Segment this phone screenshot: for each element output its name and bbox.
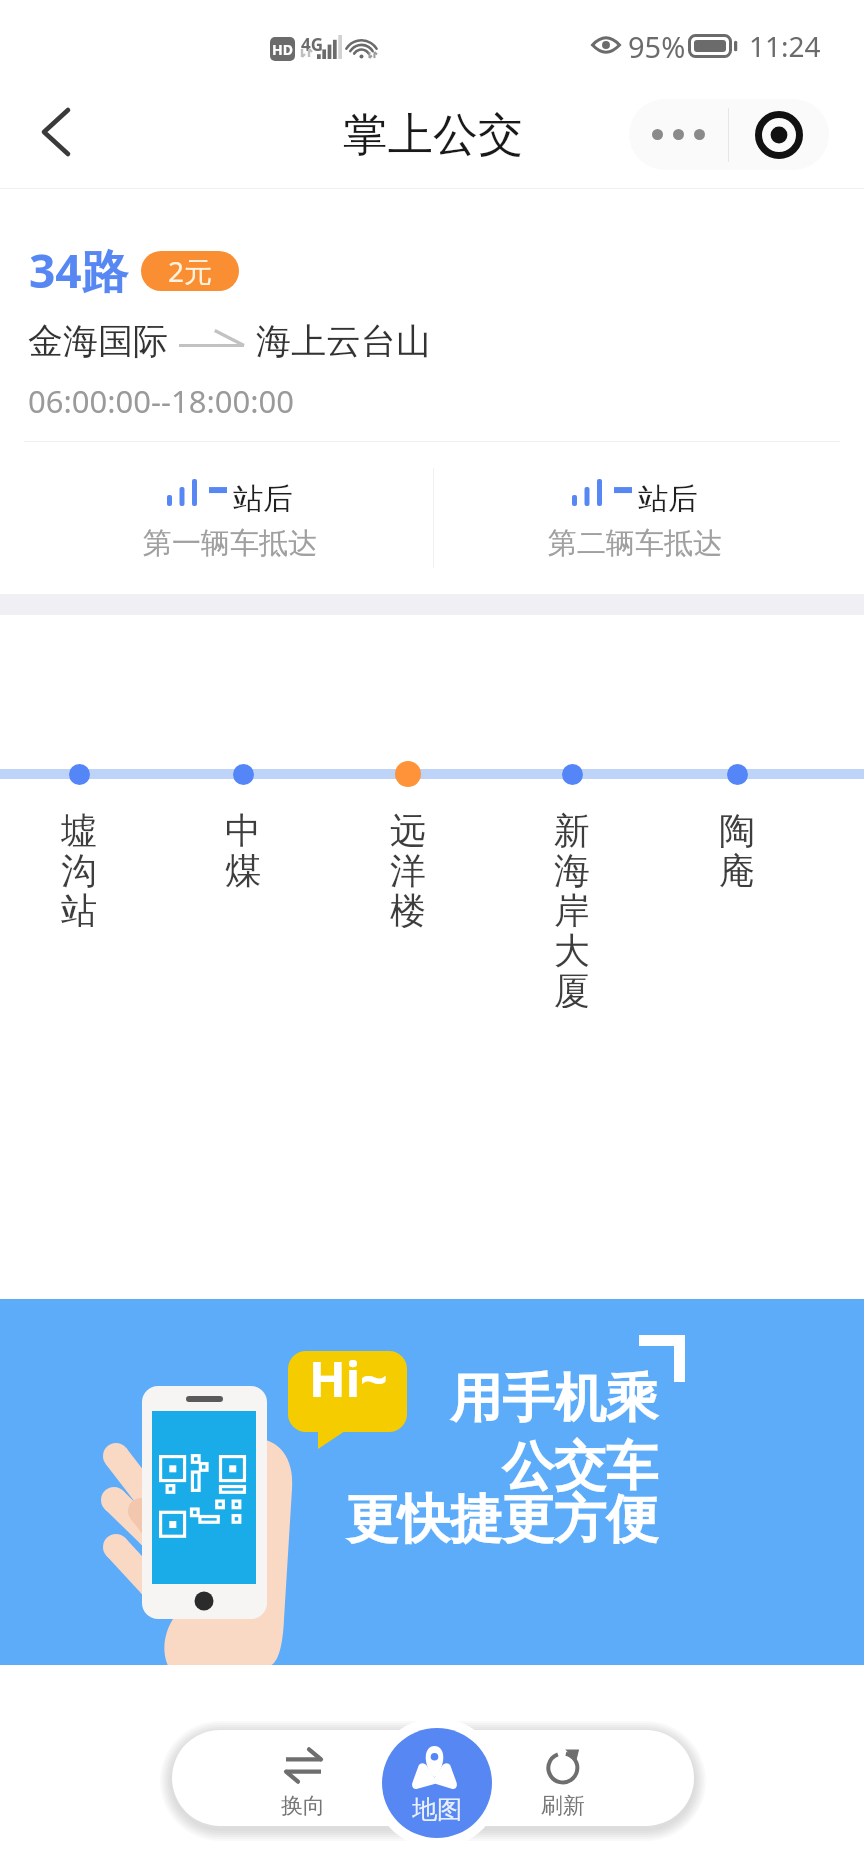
staticText: 新 [554, 808, 590, 848]
button[interactable]: Close mini program [729, 99, 829, 170]
staticText: 大 [554, 928, 590, 968]
button[interactable]: More options [629, 99, 728, 170]
staticText: 海 [554, 848, 590, 888]
staticText: 厦 [554, 968, 590, 1008]
staticText: 公交车 [502, 1434, 658, 1500]
staticText: 岸 [554, 888, 590, 928]
button[interactable]: 站后 [100, 462, 360, 572]
staticText: 34路 [29, 239, 128, 302]
button[interactable]: 换向 [233, 1735, 373, 1825]
staticText: 4G [301, 33, 324, 56]
button[interactable]: 墟 [39, 808, 119, 928]
staticText: 更快捷更方便 [346, 1487, 658, 1553]
button[interactable]: 新 [532, 808, 612, 1008]
staticText: 掌上公交 [343, 107, 523, 164]
staticText: 刷新 [493, 1792, 633, 1820]
staticText: 沟 [61, 848, 97, 888]
button[interactable]: Ride the bus with your phone ad [0, 1299, 864, 1665]
staticText: 用手机乘 [450, 1366, 658, 1432]
staticText: 站 [61, 888, 97, 928]
button[interactable]: 地图 [382, 1728, 492, 1838]
staticText: 远 [390, 808, 426, 848]
staticText: 煤 [225, 848, 261, 888]
staticText: 洋 [390, 848, 426, 888]
staticText: 06:00:00--18:00:00 [28, 380, 294, 422]
staticText: Hi~ [309, 1351, 388, 1411]
staticText: 95% [628, 27, 686, 66]
staticText: 庵 [719, 848, 755, 888]
button[interactable]: 中 [203, 808, 283, 888]
button[interactable]: 陶 [697, 808, 777, 888]
staticText: 2元 [168, 252, 213, 290]
staticText: 第一辆车抵达 [100, 525, 360, 562]
staticText: 中 [225, 808, 261, 848]
staticText: 站后 [638, 480, 698, 518]
staticText: 楼 [390, 888, 426, 928]
staticText: 第二辆车抵达 [505, 525, 765, 562]
staticText: 11:24 [749, 27, 821, 65]
staticText: 金海国际 [28, 319, 168, 363]
button[interactable]: 刷新 [493, 1735, 633, 1825]
staticText: 墟 [61, 808, 97, 848]
button[interactable]: 站后 [505, 462, 765, 572]
staticText: 海上云台山 [256, 319, 431, 363]
button[interactable]: Back [20, 96, 92, 168]
staticText: 换向 [233, 1792, 373, 1820]
staticText: 地图 [382, 1794, 492, 1825]
staticText: HD [272, 40, 293, 59]
button[interactable]: 远 [368, 808, 448, 928]
staticText: 站后 [233, 480, 293, 518]
staticText: 陶 [719, 808, 755, 848]
